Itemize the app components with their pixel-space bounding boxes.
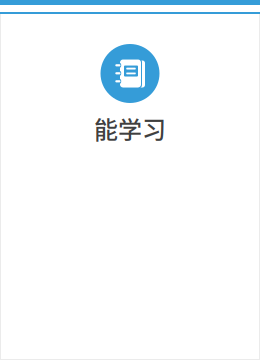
staticText: 能学习	[94, 111, 166, 146]
button[interactable]: 能学习	[0, 44, 260, 146]
